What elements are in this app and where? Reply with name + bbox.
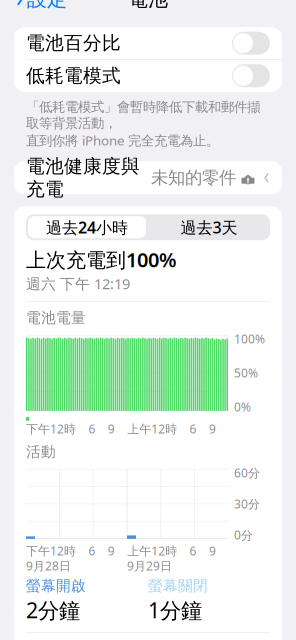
staticText: 週六 下午 12:19 — [26, 274, 130, 293]
staticText: 30分 — [234, 496, 260, 512]
staticText: 9月29日 — [127, 558, 172, 574]
button[interactable]: 電池健康度與充電 — [14, 161, 282, 194]
staticText: 6 — [190, 421, 197, 437]
staticText: 9 — [108, 421, 115, 437]
staticText: 1分鐘 — [148, 596, 202, 624]
staticText: 9 — [209, 421, 216, 437]
button[interactable]: 電池百分比 — [14, 27, 282, 59]
staticText: 未知的零件 — [151, 167, 236, 188]
staticText: 上午12時 — [127, 543, 177, 559]
staticText: 9 — [209, 543, 216, 559]
staticText: 上午12時 — [127, 421, 177, 437]
staticText: 100% — [234, 331, 265, 347]
staticText: 6 — [190, 543, 197, 559]
staticText: 9月28日 — [26, 558, 71, 574]
staticText: 過去3天 — [180, 217, 237, 238]
button[interactable]: 低耗電模式 — [14, 60, 282, 92]
staticText: 6 — [88, 543, 95, 559]
staticText: 6 — [88, 421, 95, 437]
staticText: 9 — [108, 543, 115, 559]
staticText: 電池電量 — [26, 309, 86, 327]
staticText: 60分 — [234, 465, 260, 481]
staticText: 螢幕關閉 — [148, 577, 208, 595]
staticText: 活動 — [26, 443, 56, 461]
staticText: 下午12時 — [26, 421, 76, 437]
staticText: 低耗電模式 — [26, 64, 121, 87]
button[interactable]: 設定 — [6, 0, 77, 17]
staticText: 電池健康度與充電 — [26, 155, 140, 201]
staticText: 50% — [234, 365, 258, 381]
button[interactable]: 過去24小時 — [26, 214, 148, 240]
staticText: 「低耗電模式」會暫時降低下載和郵件擷取等背景活動， 直到你將 iPhone 完全… — [26, 99, 260, 149]
staticText: 上次充電到100% — [26, 246, 177, 273]
staticText: 螢幕開啟 — [26, 577, 86, 595]
staticText: 下午12時 — [26, 543, 76, 559]
staticText: 電池百分比 — [26, 32, 121, 55]
staticText: 設定 — [27, 0, 67, 12]
button[interactable]: 過去3天 — [148, 214, 270, 240]
staticText: 0分 — [234, 527, 253, 543]
staticText: 過去24小時 — [46, 217, 128, 238]
staticText: 電池 — [128, 0, 168, 12]
staticText: 2分鐘 — [26, 596, 80, 624]
staticText: 0% — [234, 399, 251, 415]
